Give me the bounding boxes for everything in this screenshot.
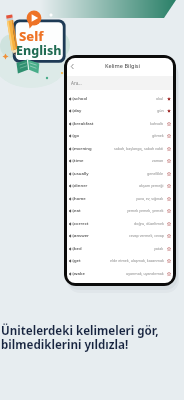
staticText: school — [74, 96, 88, 102]
staticText: eat — [74, 208, 81, 214]
button[interactable]: Ara... — [67, 76, 173, 90]
other: Seslendir — [69, 134, 73, 138]
other: Seslendir — [69, 122, 73, 126]
staticText: zaman — [152, 158, 164, 163]
staticText: sabah, başlangıç, sabah vakti — [114, 146, 164, 151]
other: Seslendir — [69, 147, 73, 151]
staticText: cevap vermek, cevap — [129, 233, 164, 238]
button[interactable]: Seslendir — [67, 104, 173, 117]
button[interactable]: Seslendir — [67, 204, 173, 217]
staticText: uyanmak, uyandırmak — [126, 271, 164, 276]
staticText: Ünitelerdeki kelimeleri gör, bilmedikler… — [1, 323, 159, 352]
button[interactable]: Favori — [166, 158, 171, 163]
other: Seslendir — [69, 247, 73, 251]
staticText: home — [74, 196, 86, 202]
other: Seslendir — [69, 234, 73, 238]
staticText: English — [16, 42, 62, 59]
button[interactable]: Seslendir — [67, 192, 173, 205]
staticText: yemek yemek, yemek — [127, 208, 164, 213]
staticText: elde etmek, ulaşmak, kazanmak — [110, 258, 164, 263]
staticText: kahvaltı — [150, 121, 164, 126]
button[interactable]: Favori — [166, 271, 171, 276]
staticText: Kelime Bilgisi — [105, 62, 141, 69]
other: Seslendir — [69, 259, 73, 263]
button[interactable]: Seslendir — [67, 92, 173, 105]
staticText: gün — [157, 108, 164, 113]
button[interactable]: Favori — [166, 108, 171, 113]
staticText: akşam yemeği — [139, 183, 164, 188]
other: Seslendir — [69, 172, 73, 176]
staticText: time — [74, 158, 84, 164]
other: Seslendir — [69, 97, 73, 101]
other: Seslendir — [69, 184, 73, 188]
button[interactable]: Favori — [166, 171, 171, 176]
staticText: doğru, düzeltmek — [134, 221, 164, 226]
other: Seslendir — [69, 159, 73, 163]
button[interactable]: Favori — [166, 221, 171, 226]
button[interactable]: Favori — [166, 133, 171, 138]
other: Seslendir — [69, 272, 73, 276]
other: Seslendir — [69, 209, 73, 213]
button[interactable]: Favori — [166, 258, 171, 263]
staticText: genellikle — [147, 171, 164, 176]
staticText: go — [74, 133, 80, 139]
staticText: Ara... — [71, 80, 82, 86]
button[interactable]: Favori — [166, 183, 171, 188]
button[interactable]: Favori — [166, 96, 171, 101]
staticText: wake — [74, 271, 85, 277]
button[interactable]: Kelime Bilgisi — [67, 58, 173, 76]
button[interactable]: Favori — [166, 246, 171, 251]
button[interactable]: Seslendir — [67, 179, 173, 192]
staticText: yatak — [154, 246, 164, 251]
button[interactable]: Seslendir — [67, 254, 173, 267]
button[interactable]: Seslendir — [67, 154, 173, 167]
staticText: morning — [74, 146, 92, 152]
staticText: breakfast — [74, 121, 94, 127]
button[interactable]: Favori — [166, 196, 171, 201]
button[interactable]: Favori — [166, 146, 171, 151]
staticText: get — [74, 258, 81, 264]
staticText: dinner — [74, 183, 88, 189]
staticText: day — [74, 108, 82, 114]
button[interactable]: Seslendir — [67, 242, 173, 255]
button[interactable]: Seslendir — [67, 229, 173, 242]
button[interactable]: Seslendir — [67, 142, 173, 155]
button[interactable]: Seslendir — [67, 167, 173, 180]
other: Seslendir — [69, 109, 73, 113]
staticText: answer — [74, 233, 89, 239]
button[interactable]: Seslendir — [67, 117, 173, 130]
staticText: correct — [74, 221, 89, 227]
staticText: yuva, ev, sığınak — [136, 196, 164, 201]
staticText: usually — [74, 171, 89, 177]
button[interactable]: Favori — [166, 121, 171, 126]
other: Seslendir — [69, 222, 73, 226]
button[interactable]: Seslendir — [67, 129, 173, 142]
staticText: bed — [74, 246, 82, 252]
staticText: gitmek — [152, 133, 164, 138]
other: Geri — [70, 64, 75, 69]
staticText: okul — [156, 96, 164, 101]
button[interactable]: Favori — [166, 208, 171, 213]
staticText: Self — [19, 27, 44, 45]
button[interactable]: Seslendir — [67, 217, 173, 230]
button[interactable]: Favori — [166, 233, 171, 238]
button[interactable]: Seslendir — [67, 267, 173, 280]
other: Seslendir — [69, 197, 73, 201]
